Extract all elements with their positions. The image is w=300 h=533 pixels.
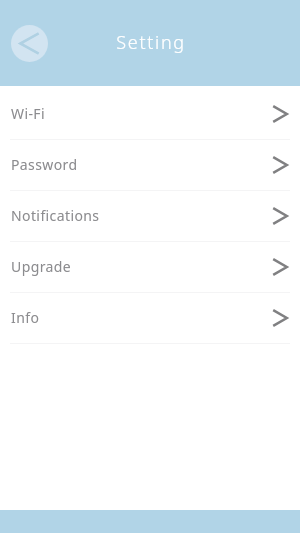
button[interactable]: Wi-Fi: [0, 89, 300, 139]
staticText: Upgrade: [11, 257, 72, 276]
staticText: Notifications: [11, 206, 100, 225]
button[interactable]: Upgrade: [0, 242, 300, 292]
button[interactable]: Info: [0, 293, 300, 343]
staticText: Password: [11, 155, 78, 174]
button[interactable]: Password: [0, 140, 300, 190]
staticText: Setting: [1, 30, 300, 55]
staticText: Wi-Fi: [11, 104, 46, 123]
staticText: Info: [11, 308, 40, 327]
button[interactable]: Notifications: [0, 191, 300, 241]
button[interactable]: Back: [11, 25, 48, 62]
